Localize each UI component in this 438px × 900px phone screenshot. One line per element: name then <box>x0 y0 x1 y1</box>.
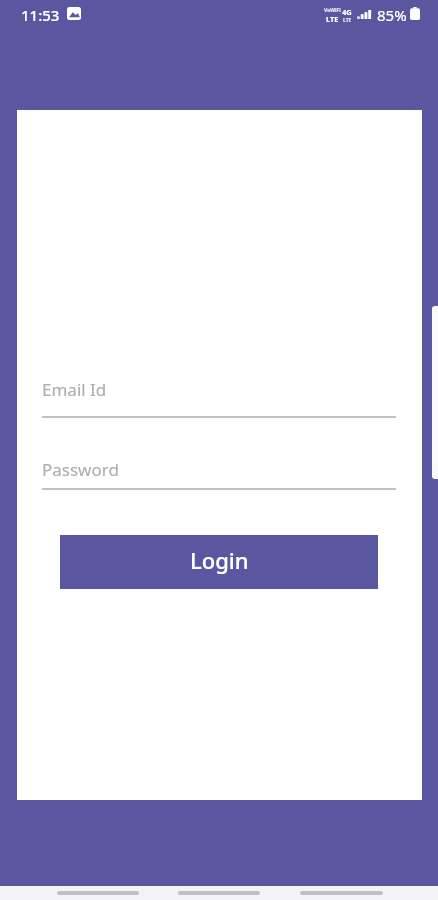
other: Screenshot <box>67 7 81 20</box>
button[interactable]: Recent apps <box>49 886 147 900</box>
staticText: Login <box>190 545 249 575</box>
button[interactable]: Email Id <box>42 382 396 418</box>
staticText: 11:53 <box>21 5 60 25</box>
staticText: Password <box>42 458 119 481</box>
staticText: LTE <box>326 14 339 24</box>
button[interactable]: Home <box>170 886 268 900</box>
staticText: VoWiFi <box>324 7 341 14</box>
button[interactable]: Password <box>42 454 396 490</box>
staticText: Email Id <box>42 378 107 401</box>
other: Battery <box>410 7 420 20</box>
staticText: 85% <box>377 5 407 25</box>
staticText: 4G <box>342 7 352 17</box>
button[interactable]: Back <box>292 886 391 900</box>
staticText: LTE <box>343 17 352 24</box>
button[interactable]: Login <box>60 535 378 589</box>
